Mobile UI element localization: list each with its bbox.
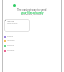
button[interactable]: Private — [4, 49, 18, 52]
staticText: The easiest way to send — [17, 8, 47, 12]
staticText: anywhere, anytime — [22, 13, 42, 16]
button[interactable]: Share — [4, 35, 18, 38]
staticText: Share — [7, 35, 13, 38]
button[interactable]: Upload — [4, 39, 18, 42]
staticText: ready to send — [7, 22, 18, 24]
staticText: Your file — [7, 20, 14, 22]
staticText: Secure — [7, 44, 14, 47]
staticText: Private — [7, 49, 15, 52]
button[interactable]: Your file — [4, 19, 30, 32]
staticText: Upload — [7, 39, 15, 42]
button[interactable]: Secure — [4, 44, 18, 47]
staticText: your files securely — [21, 11, 44, 15]
